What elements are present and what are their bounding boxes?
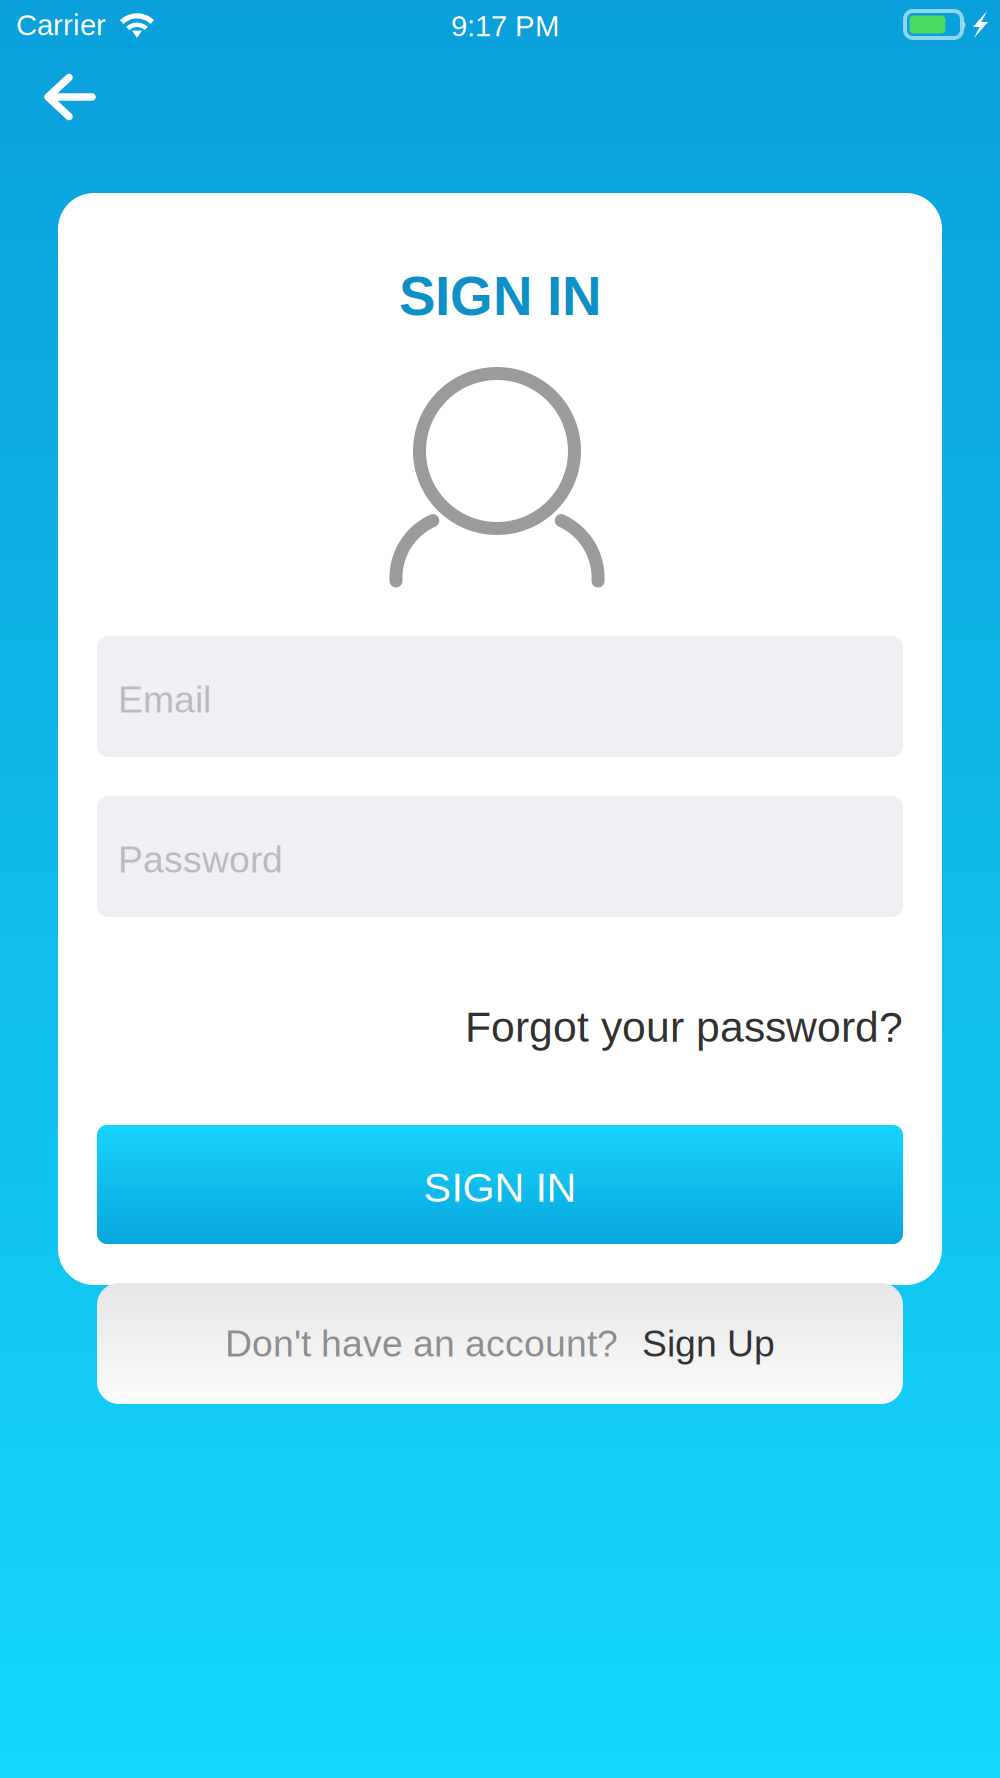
button[interactable]: Password — [97, 796, 903, 917]
staticText: Sign Up — [642, 1323, 775, 1364]
staticText: SIGN IN — [399, 265, 601, 327]
button[interactable]: SIGN IN — [97, 1125, 903, 1244]
button[interactable]: Don't have an account? — [97, 1283, 903, 1404]
staticText: Email — [118, 679, 211, 720]
staticText: Forgot your password? — [465, 1003, 903, 1051]
button[interactable]: Back — [14, 47, 124, 147]
button[interactable]: Forgot your password? — [97, 984, 903, 1070]
staticText: 9:17 PM — [451, 10, 559, 42]
staticText: Don't have an account? — [225, 1323, 618, 1364]
staticText: SIGN IN — [423, 1164, 576, 1211]
button[interactable]: Email — [97, 636, 903, 757]
staticText: Carrier — [16, 9, 106, 41]
staticText: Password — [118, 839, 283, 880]
